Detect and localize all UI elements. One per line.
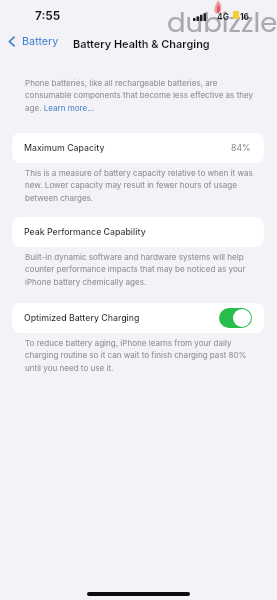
staticText: Battery Health & Charging: [73, 37, 210, 50]
staticText: 7:55: [35, 9, 61, 23]
staticText: Optimized Battery Charging: [24, 313, 140, 324]
button[interactable]: Optimized Battery Charging: [12, 303, 264, 333]
staticText: Maximum Capacity: [24, 143, 105, 154]
staticText: Battery: [22, 35, 59, 48]
staticText: Built-in dynamic software and hardware s…: [25, 252, 258, 287]
button[interactable]: Maximum Capacity: [12, 133, 264, 163]
staticText: 4G: [217, 12, 229, 22]
button[interactable]: Optimized Battery Charging toggle: [219, 308, 252, 328]
button[interactable]: Peak Performance Capability: [12, 217, 264, 247]
staticText: To reduce battery aging, iPhone learns f…: [25, 338, 258, 373]
staticText: This is a measure of battery capacity re…: [25, 168, 258, 203]
staticText: Peak Performance Capability: [24, 227, 146, 238]
staticText: dubizzle: [167, 3, 277, 41]
staticText: Phone batteries, like all rechargeable b…: [25, 78, 258, 113]
button[interactable]: Battery: [8, 35, 59, 48]
staticText: 84%: [231, 143, 251, 154]
staticText: 16: [240, 12, 250, 22]
